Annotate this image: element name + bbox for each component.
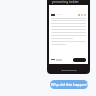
staticText: Why did this happen? <box>51 82 88 87</box>
button[interactable]: Why did this happen? <box>50 80 88 89</box>
button[interactable] <box>73 58 86 62</box>
staticText: presenting twitter <box>52 0 79 4</box>
